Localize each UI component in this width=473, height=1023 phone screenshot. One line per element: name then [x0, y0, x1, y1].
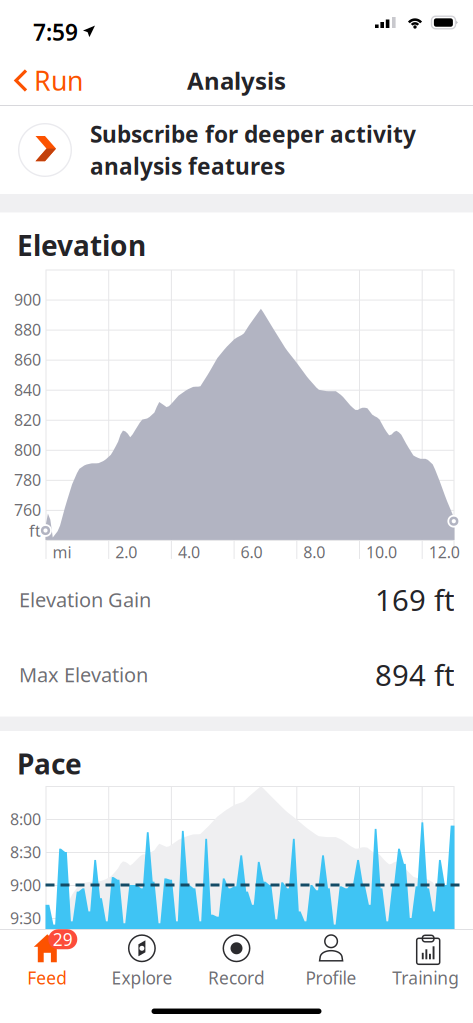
staticText: 10.0	[366, 541, 397, 562]
staticText: 820	[14, 409, 41, 430]
staticText: 8:30	[10, 841, 41, 863]
button[interactable]: Training	[378, 930, 473, 992]
staticText: 9:00	[10, 874, 41, 896]
staticText: 9:30	[10, 907, 41, 929]
button[interactable]: 29	[0, 930, 95, 992]
staticText: 800	[14, 439, 41, 460]
staticText: 169 ft	[375, 580, 455, 619]
button[interactable]: Elevation Gain	[0, 562, 473, 637]
staticText: Elevation Gain	[19, 586, 151, 613]
staticText: Run	[34, 63, 83, 98]
staticText: 8.0	[303, 541, 325, 562]
staticText: Elevation	[17, 226, 146, 264]
staticText: 894 ft	[375, 655, 455, 694]
staticText: 880	[14, 319, 41, 340]
staticText: Feed	[27, 966, 67, 989]
staticText: Explore	[111, 966, 172, 989]
staticText: 12.0	[429, 541, 460, 562]
button[interactable]: Record	[189, 930, 284, 992]
staticText: 840	[14, 379, 41, 400]
staticText: 780	[14, 469, 41, 490]
button[interactable]: Explore	[95, 930, 189, 992]
staticText: 6.0	[241, 541, 263, 562]
staticText: Max Elevation	[19, 661, 148, 688]
staticText: mi	[52, 541, 71, 562]
staticText: Pace	[17, 745, 82, 782]
staticText: Profile	[306, 966, 357, 989]
staticText: 760	[14, 499, 41, 520]
button[interactable]: Max Elevation	[0, 637, 473, 712]
button[interactable]: Run	[0, 55, 93, 106]
staticText: ft	[29, 520, 41, 541]
staticText: 8:00	[10, 808, 41, 830]
button[interactable]: Profile	[284, 930, 378, 992]
staticText: Subscribe for deeper activity	[90, 119, 416, 149]
staticText: 860	[14, 349, 41, 370]
button[interactable]: Subscribe for deeper activity	[0, 106, 473, 194]
staticText: 4.0	[178, 541, 200, 562]
staticText: Record	[208, 966, 265, 989]
staticText: 29	[53, 928, 73, 951]
staticText: Analysis	[187, 65, 286, 96]
staticText: Training	[392, 966, 459, 989]
staticText: 900	[14, 289, 41, 310]
staticText: 2.0	[115, 541, 137, 562]
staticText: 7:59	[33, 17, 78, 47]
staticText: analysis features	[90, 151, 285, 181]
